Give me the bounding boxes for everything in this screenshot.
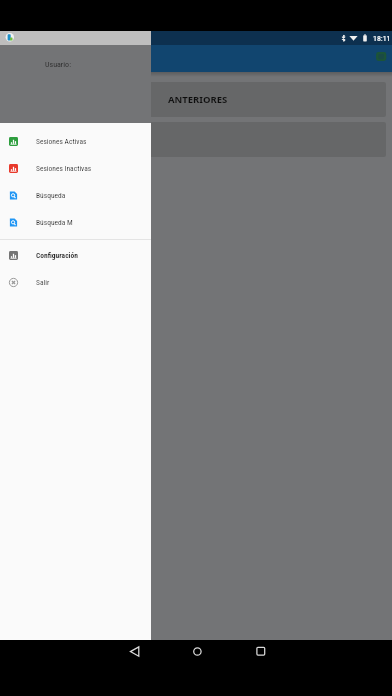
staticText: Sesiones Inactivas — [36, 164, 92, 173]
button[interactable]: Home — [185, 640, 209, 664]
staticText: Usuario: — [45, 60, 71, 69]
staticText: Búsqueda M — [36, 218, 73, 227]
button[interactable]: Sesiones Activas — [0, 128, 151, 155]
staticText: Salir — [36, 278, 50, 287]
staticText: ANTERIORES — [168, 93, 228, 106]
button[interactable]: Nuevo — [372, 50, 390, 66]
button[interactable]: Configuración — [0, 242, 151, 269]
button[interactable] — [140, 122, 386, 157]
button[interactable]: Back — [123, 640, 147, 664]
button[interactable]: Búsqueda M — [0, 209, 151, 236]
button[interactable]: Salir — [0, 269, 151, 296]
button[interactable]: Sesiones Inactivas — [0, 155, 151, 182]
button[interactable]: Recents — [248, 640, 272, 664]
staticText: 18:11 — [373, 34, 391, 43]
staticText: Sesiones Activas — [36, 137, 87, 146]
staticText: Configuración — [36, 251, 78, 260]
staticText: Búsqueda — [36, 191, 66, 200]
button[interactable]: Búsqueda — [0, 182, 151, 209]
button[interactable]: ANTERIORES — [140, 82, 386, 117]
